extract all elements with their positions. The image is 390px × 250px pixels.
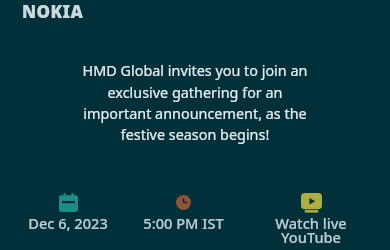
staticText: HMD Global invites you to join an exclus… (78, 61, 312, 144)
other: Date (59, 193, 78, 212)
staticText: Watch live YouTube (275, 213, 347, 247)
staticText: 5:00 PM IST (143, 213, 224, 233)
button[interactable]: Time (128, 188, 238, 246)
other: Watch live (301, 192, 322, 213)
other: Time (176, 195, 191, 210)
button[interactable]: NOKIA (22, 0, 84, 23)
button[interactable]: Date (13, 188, 123, 246)
staticText: NOKIA (22, 0, 84, 23)
staticText: Dec 6, 2023 (28, 213, 108, 233)
button[interactable]: Watch live (256, 188, 366, 246)
